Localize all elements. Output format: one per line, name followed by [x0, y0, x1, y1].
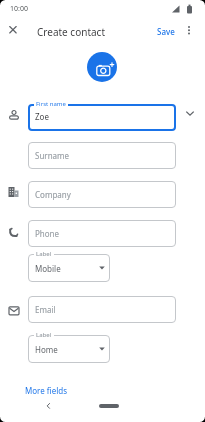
staticText: Label — [36, 331, 52, 339]
staticText: Surname — [35, 150, 70, 161]
button[interactable] — [99, 404, 119, 408]
button[interactable]: Email — [28, 296, 176, 323]
button[interactable] — [87, 52, 117, 82]
staticText: Home — [35, 344, 58, 355]
button[interactable]: Home — [28, 335, 110, 363]
button[interactable] — [183, 24, 195, 36]
button[interactable]: Mobile — [28, 254, 110, 282]
staticText: Create contact — [37, 25, 106, 39]
button[interactable]: Zoe — [28, 104, 176, 131]
button[interactable]: More fields — [25, 385, 67, 396]
button[interactable]: Save — [157, 26, 175, 37]
staticText: First name — [36, 100, 66, 108]
button[interactable]: Phone — [28, 220, 176, 247]
button[interactable]: Surname — [28, 142, 176, 169]
staticText: Company — [35, 189, 71, 200]
staticText: 10:00 — [10, 4, 28, 14]
button[interactable] — [5, 22, 21, 38]
staticText: Email — [35, 304, 56, 315]
staticText: Zoe — [35, 111, 49, 122]
staticText: Mobile — [35, 263, 61, 274]
button[interactable]: Company — [28, 181, 176, 208]
staticText: Label — [36, 250, 52, 258]
staticText: Phone — [35, 228, 60, 239]
